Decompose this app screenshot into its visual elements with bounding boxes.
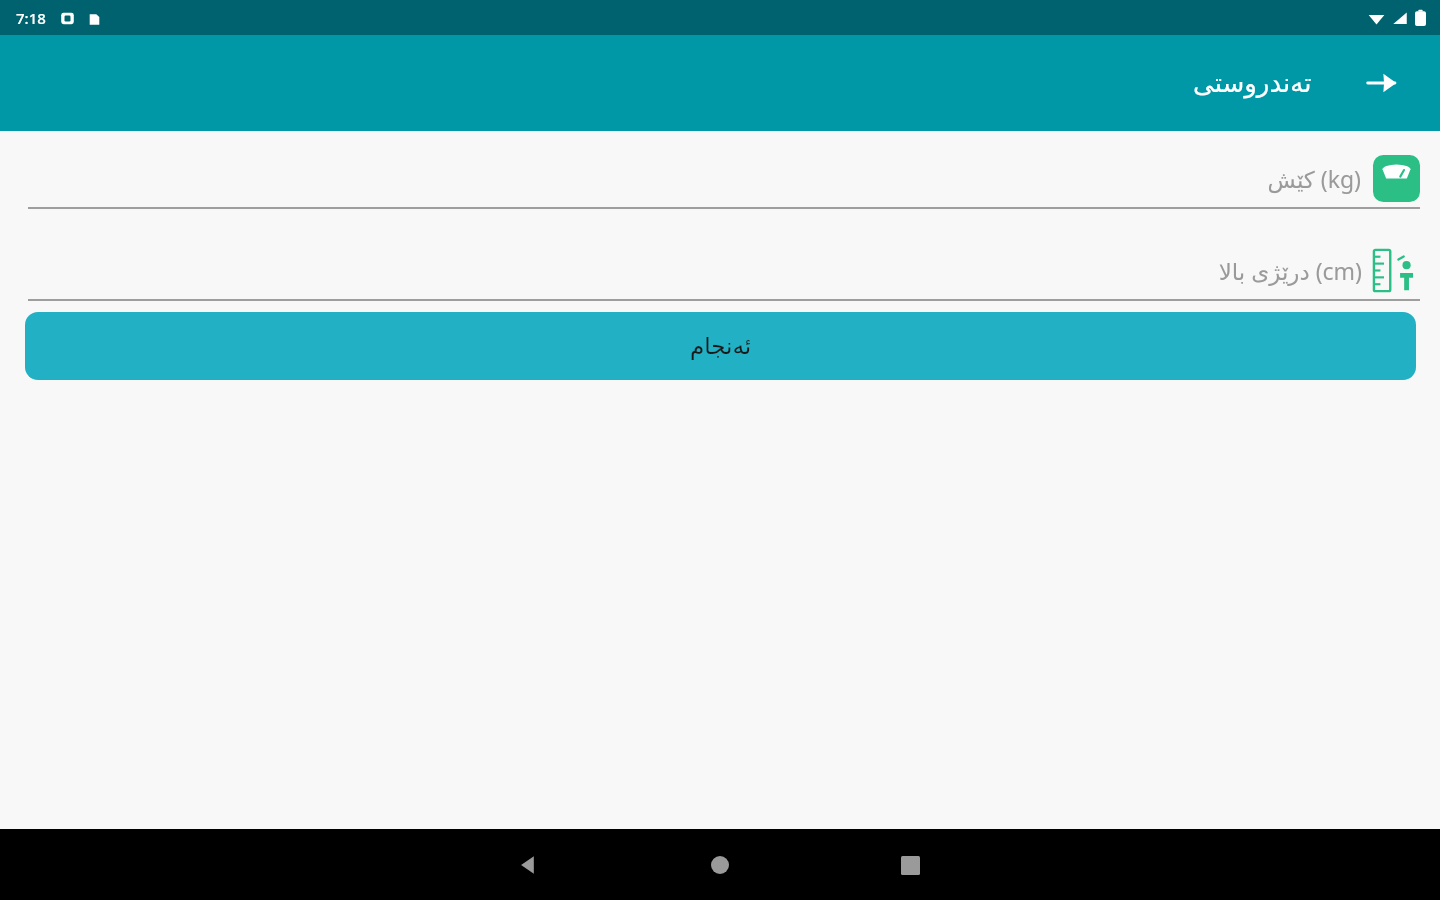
button[interactable]: Home [696, 841, 744, 889]
staticText: تەندروستی [1193, 68, 1312, 98]
staticText: کێش (kg) [1267, 163, 1361, 194]
button[interactable]: Recent apps [886, 841, 934, 889]
staticText: ئەنجام [690, 333, 752, 360]
button[interactable]: Back [505, 841, 553, 889]
button[interactable]: ئەنجام [25, 312, 1416, 380]
button[interactable]: کێش (kg) [28, 149, 1420, 207]
staticText: 7:18 [16, 8, 46, 28]
button[interactable]: Back [1354, 55, 1410, 111]
button[interactable]: درێژی بالا (cm) [28, 241, 1420, 299]
staticText: درێژی بالا (cm) [1218, 255, 1362, 286]
